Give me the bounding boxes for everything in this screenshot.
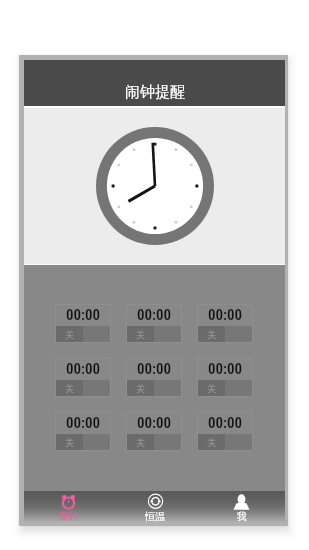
staticText: 闹钟提醒 [125,83,185,102]
button[interactable]: 00:00 [55,304,111,343]
button[interactable]: 我 [198,491,285,522]
staticText: 关 [65,329,74,340]
staticText: 恒温 [145,510,165,522]
button[interactable]: 00:00 [197,304,253,343]
button[interactable]: 00:00 [55,412,111,451]
staticText: 00:00 [208,360,243,378]
staticText: 00:00 [137,360,172,378]
staticText: 关 [65,437,74,448]
staticText: 00:00 [137,306,172,324]
staticText: 关 [207,383,216,394]
staticText: 00:00 [208,414,243,432]
staticText: 00:00 [66,306,101,324]
button[interactable]: 00:00 [197,412,253,451]
button[interactable]: 恒温 [111,491,198,522]
button[interactable]: 00:00 [197,358,253,397]
staticText: 关 [136,329,145,340]
button[interactable]: 00:00 [55,358,111,397]
button[interactable]: 00:00 [126,304,182,343]
button[interactable]: 00:00 [126,412,182,451]
staticText: 00:00 [208,306,243,324]
staticText: 00:00 [66,414,101,432]
button[interactable]: 闹钟 [24,491,111,522]
staticText: 关 [136,383,145,394]
staticText: 关 [207,329,216,340]
staticText: 00:00 [66,360,101,378]
staticText: 闹钟 [58,510,78,522]
staticText: 关 [207,437,216,448]
staticText: 关 [65,383,74,394]
staticText: 关 [136,437,145,448]
staticText: 我 [237,510,247,522]
button[interactable]: 00:00 [126,358,182,397]
staticText: 00:00 [137,414,172,432]
